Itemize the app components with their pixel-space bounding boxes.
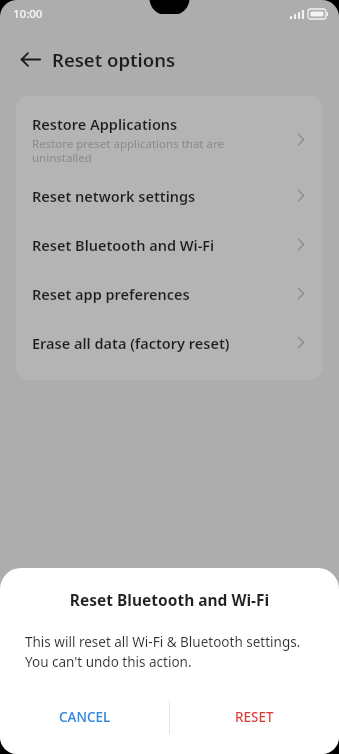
button[interactable]: Reset Bluetooth and Wi-Fi	[16, 220, 323, 269]
staticText: 10:00	[13, 6, 43, 22]
staticText: Restore preset applications that are uni…	[32, 136, 224, 165]
staticText: This will reset all Wi-Fi & Bluetooth se…	[25, 633, 301, 671]
staticText: Reset app preferences	[32, 284, 190, 304]
button[interactable]: CANCEL	[0, 690, 169, 744]
staticText: Restore Applications	[32, 114, 178, 134]
staticText: Erase all data (factory reset)	[32, 333, 230, 353]
staticText: Reset Bluetooth and Wi-Fi	[0, 589, 339, 610]
button[interactable]: Reset network settings	[16, 171, 323, 220]
button[interactable]: Restore Applications	[16, 108, 323, 171]
button[interactable]: Reset app preferences	[16, 269, 323, 318]
button[interactable]: RESET	[170, 690, 339, 744]
button[interactable]: Erase all data (factory reset)	[16, 318, 323, 367]
staticText: Reset options	[52, 47, 176, 72]
button[interactable]: Back	[14, 43, 46, 75]
staticText: CANCEL	[59, 708, 111, 726]
staticText: RESET	[235, 708, 274, 726]
staticText: Reset Bluetooth and Wi-Fi	[32, 235, 215, 255]
staticText: Reset network settings	[32, 186, 196, 206]
